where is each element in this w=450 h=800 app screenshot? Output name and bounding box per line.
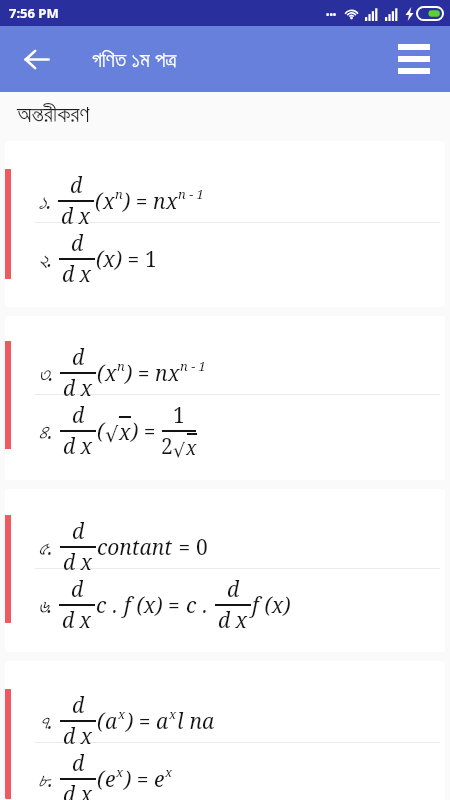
staticText: (x)	[259, 591, 291, 620]
staticText: •••	[326, 8, 337, 20]
button[interactable]: ৩.	[5, 316, 445, 480]
staticText: (	[97, 417, 105, 446]
staticText: n − 1	[180, 357, 206, 375]
staticText: contant	[97, 533, 173, 562]
staticText: x	[116, 763, 124, 781]
staticText: d x	[218, 606, 248, 635]
staticText: ) =	[123, 187, 153, 216]
staticText: e	[154, 765, 165, 794]
staticText: ৪.	[37, 417, 59, 446]
staticText: c	[186, 591, 197, 620]
staticText: ৫.	[37, 533, 59, 562]
staticText: a	[105, 707, 118, 736]
staticText: x	[169, 705, 177, 723]
staticText: 7:56 PM	[9, 4, 59, 22]
staticText: .	[197, 591, 214, 620]
staticText: গণিত ১ম পত্র	[92, 45, 177, 74]
staticText: d	[71, 229, 84, 258]
staticText: (x) =	[131, 591, 186, 620]
staticText: x	[186, 435, 197, 461]
staticText: d x	[62, 260, 92, 289]
staticText: √	[173, 439, 186, 461]
staticText: ১.	[37, 187, 57, 216]
staticText: √	[105, 423, 119, 447]
staticText: 1	[173, 401, 185, 430]
staticText: d x	[63, 548, 93, 577]
staticText: (	[97, 707, 105, 736]
staticText: d	[72, 691, 85, 720]
button[interactable]: ৭.	[5, 661, 445, 800]
staticText: x	[118, 705, 126, 723]
staticText: d x	[63, 374, 93, 403]
staticText: d	[71, 575, 84, 604]
staticText: x	[168, 359, 180, 388]
staticText: n	[155, 359, 168, 388]
staticText: d	[72, 343, 85, 372]
staticText: n	[115, 185, 123, 203]
staticText: d x	[63, 432, 93, 461]
staticText: d	[72, 517, 85, 546]
staticText: 0	[196, 533, 208, 562]
staticText: x	[105, 359, 117, 388]
button[interactable]: ৫.	[5, 489, 445, 652]
staticText: d x	[63, 722, 93, 751]
staticText: f	[252, 591, 259, 620]
staticText: n	[117, 357, 125, 375]
staticText: x	[165, 763, 173, 781]
staticText: =	[173, 533, 196, 562]
staticText: অন্তরীকরণ	[17, 104, 90, 127]
staticText: d x	[63, 780, 93, 800]
staticText: f	[124, 591, 131, 620]
staticText: ৭.	[37, 707, 59, 736]
staticText: l	[177, 707, 184, 736]
staticText: n − 1	[178, 185, 204, 203]
staticText: na	[184, 707, 215, 736]
staticText: d	[70, 171, 83, 200]
staticText: d	[227, 575, 240, 604]
staticText: ) =	[126, 707, 156, 736]
staticText: d x	[62, 606, 92, 635]
staticText: ৬.	[37, 591, 58, 620]
staticText: ২.	[37, 245, 58, 274]
staticText: ৩.	[37, 359, 59, 388]
button[interactable]: ১.	[5, 141, 445, 307]
staticText: (	[97, 765, 105, 794]
staticText: d	[72, 749, 85, 778]
staticText: x	[103, 187, 115, 216]
staticText: e	[105, 765, 116, 794]
staticText: d	[72, 401, 85, 430]
button[interactable]: Back	[12, 35, 60, 83]
staticText: n	[153, 187, 166, 216]
staticText: d x	[61, 202, 91, 231]
staticText: (	[95, 187, 103, 216]
staticText: .	[107, 591, 124, 620]
staticText: x	[119, 418, 131, 447]
staticText: (x) =	[96, 245, 145, 274]
staticText: ) =	[131, 417, 161, 446]
staticText: x	[166, 187, 178, 216]
staticText: ৮.	[37, 765, 59, 794]
button[interactable]: Menu	[388, 33, 440, 85]
staticText: ) =	[124, 765, 154, 794]
staticText: 2	[161, 432, 173, 461]
staticText: c	[96, 591, 107, 620]
staticText: 1	[145, 245, 157, 274]
staticText: (	[97, 359, 105, 388]
staticText: a	[156, 707, 169, 736]
staticText: ) =	[125, 359, 155, 388]
